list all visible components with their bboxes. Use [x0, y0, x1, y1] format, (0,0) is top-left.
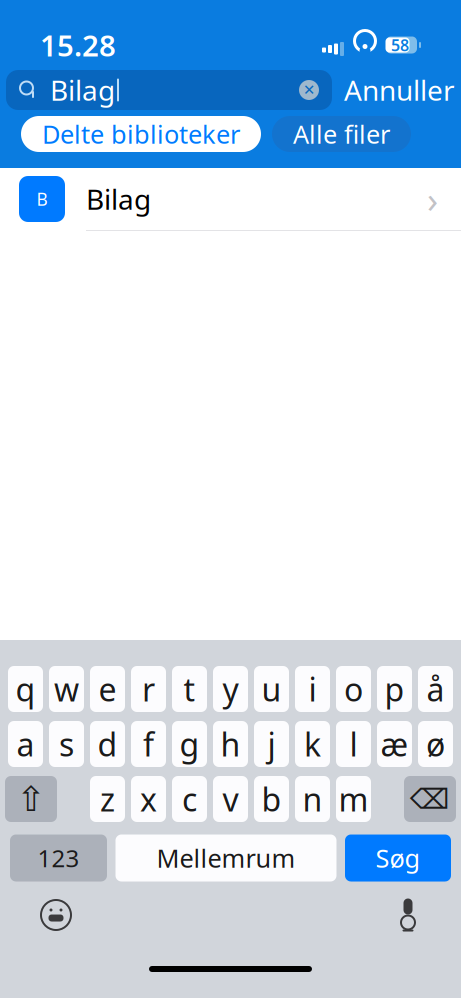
staticText: r	[142, 668, 155, 710]
button[interactable]: t	[172, 666, 207, 712]
staticText: b	[261, 778, 281, 820]
staticText: ⇧	[16, 779, 45, 819]
button[interactable]: v	[213, 776, 248, 822]
staticText: æ	[380, 723, 408, 765]
staticText: e	[98, 668, 116, 710]
staticText: v	[222, 778, 238, 820]
button[interactable]: c	[172, 776, 207, 822]
staticText: f	[143, 723, 154, 765]
button[interactable]: f	[131, 721, 166, 767]
staticText: ✕	[303, 82, 315, 98]
staticText: Annuller	[344, 71, 455, 109]
button[interactable]: g	[172, 721, 207, 767]
staticText: å	[426, 668, 444, 710]
staticText: p	[384, 668, 404, 710]
staticText: z	[100, 778, 115, 820]
staticText: a	[16, 723, 34, 765]
button[interactable]: h	[213, 721, 248, 767]
button[interactable]: a	[8, 721, 43, 767]
staticText: 58	[391, 34, 409, 56]
button[interactable]: Søg	[345, 834, 451, 881]
staticText: s	[59, 723, 74, 765]
staticText: ø	[426, 723, 445, 765]
staticText: ›	[427, 175, 438, 223]
button[interactable]: Dictation	[395, 898, 421, 932]
staticText: ⌫	[410, 783, 450, 815]
staticText: Søg	[375, 841, 420, 875]
button[interactable]: l	[336, 721, 371, 767]
button[interactable]: m	[336, 776, 371, 822]
button[interactable]: Delte biblioteker	[21, 116, 261, 152]
button[interactable]: ø	[418, 721, 453, 767]
staticText: g	[179, 723, 199, 765]
button[interactable]: s	[49, 721, 84, 767]
staticText: u	[261, 668, 281, 710]
button[interactable]: Bilag	[6, 70, 332, 110]
button[interactable]: k	[295, 721, 330, 767]
button[interactable]: r	[131, 666, 166, 712]
button[interactable]: z	[90, 776, 125, 822]
staticText: B	[36, 187, 47, 210]
button[interactable]: x	[131, 776, 166, 822]
button[interactable]: Emoji	[40, 899, 72, 931]
button[interactable]: e	[90, 666, 125, 712]
staticText: 15.28	[40, 25, 116, 64]
button[interactable]: u	[254, 666, 289, 712]
button[interactable]: y	[213, 666, 248, 712]
button[interactable]: Mellemrum	[115, 834, 336, 881]
button[interactable]: b	[254, 776, 289, 822]
staticText: t	[183, 668, 195, 710]
button[interactable]: Alle filer	[272, 116, 411, 152]
staticText: l	[349, 723, 357, 765]
staticText: n	[302, 778, 322, 820]
staticText: i	[308, 668, 316, 710]
button[interactable]: Clear text	[299, 80, 319, 100]
button[interactable]: p	[377, 666, 412, 712]
button[interactable]: n	[295, 776, 330, 822]
button[interactable]: i	[295, 666, 330, 712]
staticText: j	[267, 723, 275, 765]
button[interactable]: Delete	[404, 776, 456, 822]
button[interactable]: B	[0, 168, 461, 230]
staticText: Bilag	[86, 180, 151, 218]
button[interactable]: Shift	[5, 776, 57, 822]
staticText: Delte biblioteker	[42, 117, 240, 151]
staticText: q	[15, 668, 35, 710]
staticText: k	[304, 723, 321, 765]
button[interactable]: æ	[377, 721, 412, 767]
staticText: Alle filer	[293, 117, 390, 151]
button[interactable]: d	[90, 721, 125, 767]
staticText: h	[220, 723, 240, 765]
button[interactable]: j	[254, 721, 289, 767]
staticText: m	[338, 778, 368, 820]
staticText: Bilag	[50, 71, 115, 109]
staticText: w	[54, 668, 79, 710]
button[interactable]: å	[418, 666, 453, 712]
button[interactable]: w	[49, 666, 84, 712]
staticText: d	[97, 723, 117, 765]
button[interactable]: o	[336, 666, 371, 712]
button[interactable]: Annuller	[344, 71, 455, 109]
staticText: 123	[37, 842, 79, 874]
button[interactable]: q	[8, 666, 43, 712]
staticText: y	[222, 668, 238, 710]
staticText: o	[344, 668, 363, 710]
button[interactable]: 123	[10, 834, 107, 881]
staticText: x	[140, 778, 157, 820]
staticText: c	[182, 778, 197, 820]
staticText: Mellemrum	[156, 841, 295, 875]
